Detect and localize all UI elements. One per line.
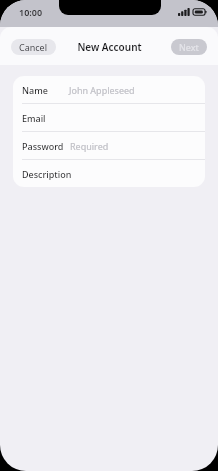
staticText: Description (22, 168, 72, 180)
other: Battery (193, 8, 207, 16)
other: Cellular signal (178, 8, 190, 16)
staticText: Required (70, 140, 109, 152)
button[interactable]: Email (13, 104, 205, 132)
staticText: 10:00 (19, 6, 43, 18)
button[interactable]: Password (13, 132, 205, 160)
staticText: New Account (77, 40, 142, 54)
button[interactable]: Description (13, 160, 205, 187)
staticText: Cancel (19, 41, 48, 53)
button[interactable]: Cancel (11, 39, 56, 55)
staticText: Email (22, 112, 46, 124)
button[interactable]: Name (13, 76, 205, 104)
staticText: Name (22, 84, 48, 96)
button[interactable]: Next (171, 39, 207, 55)
staticText: Password (22, 140, 64, 152)
staticText: Next (179, 41, 199, 53)
staticText: John Appleseed (69, 84, 135, 96)
